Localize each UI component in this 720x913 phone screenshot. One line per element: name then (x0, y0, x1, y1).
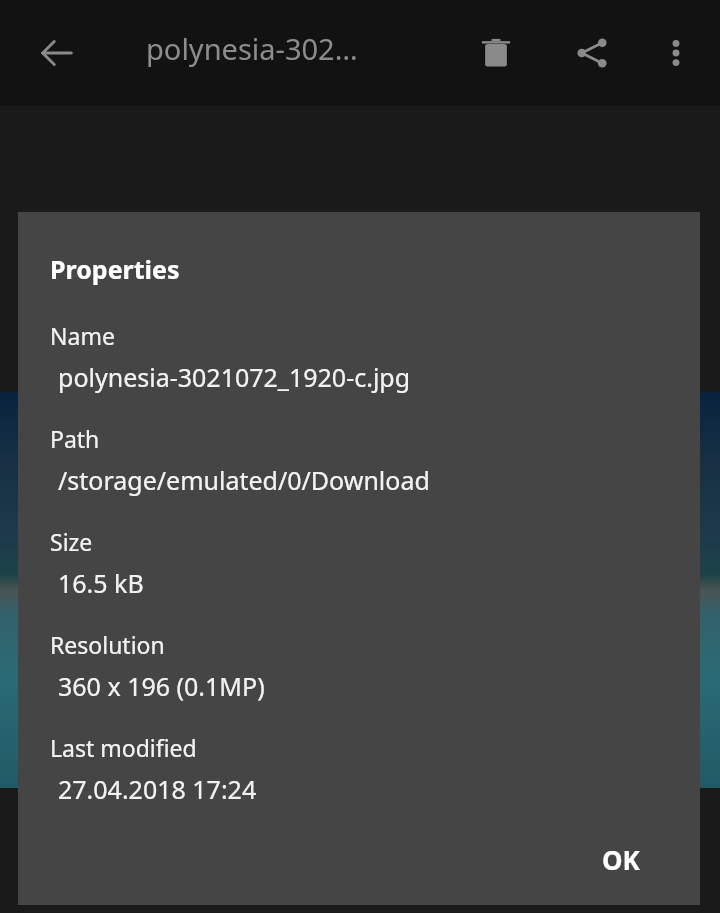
button[interactable]: OK (566, 828, 676, 890)
button[interactable]: Delete (460, 17, 532, 89)
button[interactable]: Share (556, 17, 628, 89)
staticText: polynesia-302… (146, 29, 446, 68)
staticText: 360 x 196 (0.1MP) (58, 669, 265, 703)
staticText: Size (50, 526, 93, 557)
button[interactable]: More options (640, 17, 712, 89)
staticText: Path (50, 423, 100, 454)
staticText: OK (602, 842, 640, 877)
staticText: 16.5 kB (58, 566, 144, 600)
staticText: Name (50, 320, 115, 351)
staticText: /storage/emulated/0/Download (58, 463, 430, 497)
staticText: polynesia-3021072_1920-c.jpg (58, 360, 411, 394)
staticText: Last modified (50, 732, 197, 763)
staticText: 27.04.2018 17:24 (58, 772, 257, 806)
staticText: Properties (50, 252, 180, 286)
staticText: Resolution (50, 629, 165, 660)
button[interactable]: Back (21, 17, 93, 89)
